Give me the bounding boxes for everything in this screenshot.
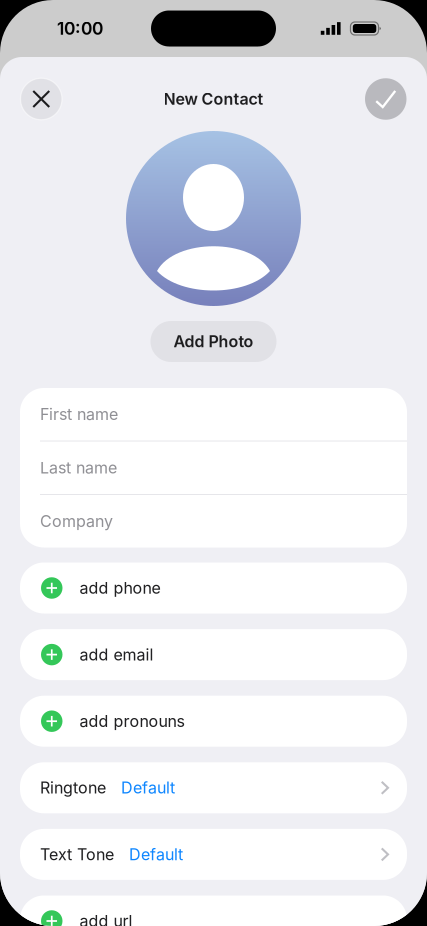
staticText: Add Photo <box>173 332 253 351</box>
staticText: add email <box>79 645 153 664</box>
staticText: New Contact <box>163 89 263 109</box>
button[interactable]: Add Photo <box>150 321 276 362</box>
staticText: First name <box>40 405 118 424</box>
staticText: add phone <box>79 578 160 598</box>
button[interactable]: Ringtone <box>20 762 407 813</box>
button[interactable]: add email <box>20 629 407 680</box>
staticText: Default <box>121 778 175 797</box>
button[interactable]: add phone <box>20 562 407 613</box>
staticText: 10:00 <box>57 18 103 39</box>
button[interactable]: Done <box>365 78 406 120</box>
button[interactable]: Close <box>20 78 62 120</box>
staticText: Last name <box>40 458 117 477</box>
staticText: add url <box>79 911 132 926</box>
button[interactable]: add pronouns <box>20 696 407 747</box>
staticText: Default <box>129 845 183 864</box>
staticText: Company <box>40 512 113 531</box>
button[interactable]: add url <box>20 895 407 926</box>
button[interactable]: Text Tone <box>20 829 407 880</box>
staticText: add pronouns <box>79 711 184 731</box>
staticText: Text Tone <box>40 845 114 864</box>
staticText: Ringtone <box>40 778 106 797</box>
